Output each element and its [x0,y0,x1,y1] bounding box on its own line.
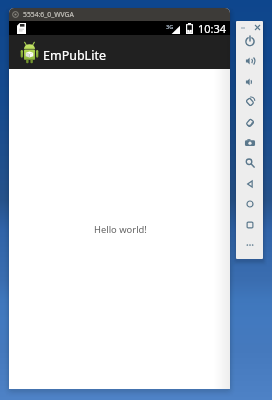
staticText: 3G [166,23,174,30]
button[interactable]: Back [236,174,263,194]
button[interactable]: Volume up [236,51,263,71]
other: Emulator menu [12,11,19,18]
button[interactable]: More [236,235,263,255]
button[interactable]: Power [236,31,263,51]
button[interactable]: Overview [236,215,263,235]
staticText: Hello world! [94,223,147,236]
button[interactable]: Take screenshot [236,133,263,153]
button[interactable]: Rotate right [236,113,263,133]
button[interactable]: Close [253,23,262,32]
button[interactable]: Emulator menu [9,8,230,21]
other: Storage notification [17,23,26,34]
button[interactable]: Minimize [238,23,247,32]
button[interactable]: EmPubLite [9,35,230,69]
button[interactable]: Zoom [236,153,263,173]
button[interactable]: Volume down [236,72,263,92]
staticText: 10:34 [198,21,227,35]
staticText: 5554:6_0_WVGA [23,10,74,19]
button[interactable]: Rotate left [236,92,263,112]
staticText: EmPubLite [43,47,106,64]
button[interactable]: Home [236,194,263,214]
